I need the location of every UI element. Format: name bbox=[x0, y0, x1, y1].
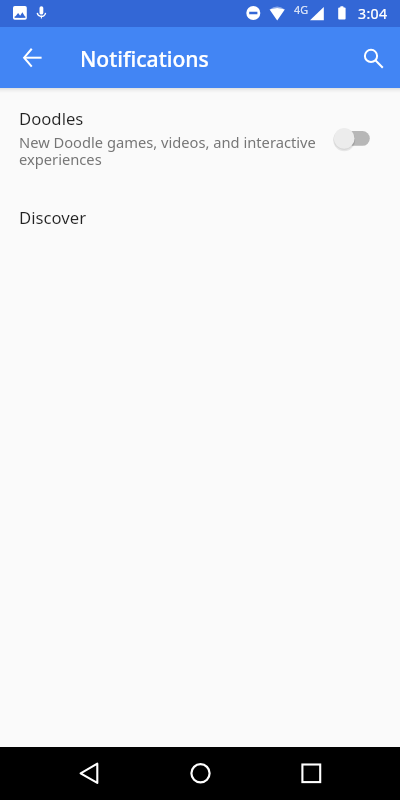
button[interactable]: Recent apps bbox=[267, 747, 400, 800]
staticText: New Doodle games, videos, and interactiv… bbox=[19, 132, 333, 169]
staticText: Doodles bbox=[19, 107, 84, 130]
staticText: 4G bbox=[294, 2, 309, 17]
button[interactable]: Search bbox=[343, 34, 391, 82]
button[interactable]: Doodles toggle, off bbox=[330, 117, 360, 147]
button[interactable]: Discover bbox=[0, 192, 400, 236]
button[interactable]: Back bbox=[0, 747, 134, 800]
staticText: 3:04 bbox=[358, 4, 388, 23]
button[interactable]: Home bbox=[134, 747, 267, 800]
staticText: Notifications bbox=[80, 44, 209, 73]
button[interactable]: Navigate up bbox=[8, 34, 56, 82]
staticText: Discover bbox=[19, 206, 87, 229]
button[interactable]: Doodles bbox=[0, 88, 400, 172]
